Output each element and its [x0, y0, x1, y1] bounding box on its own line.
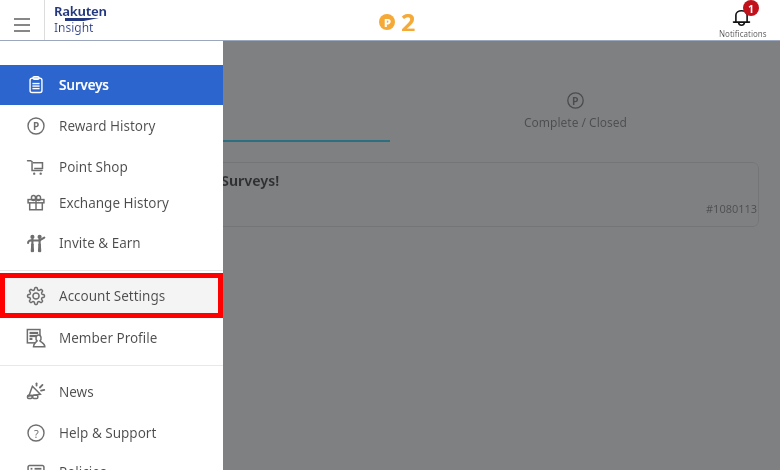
- staticText: 2: [401, 5, 416, 31]
- button[interactable]: Invite & Earn: [0, 223, 223, 263]
- staticText: Complete / Closed: [524, 114, 627, 130]
- button[interactable]: Point Shop: [0, 147, 223, 187]
- button[interactable]: Exchange History: [0, 183, 223, 223]
- staticText: Policies: [59, 463, 107, 470]
- staticText: P: [384, 15, 391, 30]
- button[interactable]: P: [390, 41, 760, 140]
- button[interactable]: There are no Available Surveys!: [20, 162, 759, 227]
- staticText: Member Profile: [59, 329, 158, 347]
- staticText: Account Settings: [59, 287, 166, 305]
- staticText: Point Shop: [59, 158, 128, 176]
- button[interactable]: Open navigation menu: [0, 0, 44, 40]
- staticText: #1080113: [706, 201, 758, 216]
- staticText: Reward History: [59, 117, 156, 135]
- button[interactable]: Policies: [0, 452, 223, 470]
- staticText: ?: [34, 426, 39, 441]
- staticText: Surveys: [59, 76, 109, 94]
- button[interactable]: Available: [0, 41, 390, 140]
- staticText: Rakuten: [54, 2, 107, 20]
- button[interactable]: Surveys: [0, 65, 223, 105]
- staticText: Help & Support: [59, 424, 157, 442]
- button[interactable]: ?: [0, 413, 223, 453]
- staticText: P: [572, 94, 579, 108]
- button[interactable]: P: [0, 106, 223, 146]
- staticText: Insight: [54, 19, 94, 35]
- staticText: P: [33, 119, 40, 133]
- staticText: 1: [748, 1, 755, 16]
- staticText: Invite & Earn: [59, 234, 141, 252]
- button[interactable]: P: [379, 9, 419, 35]
- button[interactable]: News: [0, 372, 223, 412]
- button[interactable]: Account Settings: [0, 273, 223, 318]
- button[interactable]: Member Profile: [0, 318, 223, 358]
- staticText: There are no Available Surveys!: [62, 171, 280, 190]
- button[interactable]: Notifications: [706, 0, 780, 40]
- staticText: News: [59, 383, 94, 401]
- staticText: Notifications: [719, 28, 767, 39]
- staticText: Exchange History: [59, 194, 169, 212]
